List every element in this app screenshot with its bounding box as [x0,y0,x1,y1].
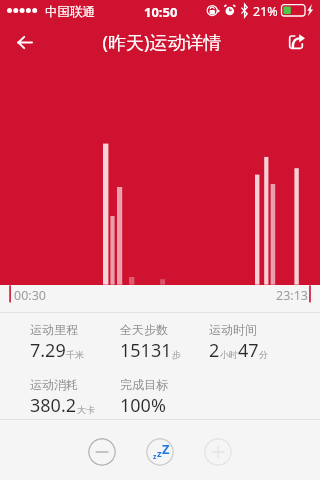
button[interactable]: Decrease [88,438,116,466]
staticText: 步 [172,349,181,360]
button[interactable]: Add [204,438,232,466]
staticText: 7.29 [30,338,66,363]
staticText: 中国联通 [45,4,95,20]
staticText: (昨天)运动详情 [2,30,320,55]
button[interactable]: Sleep [146,438,174,466]
button[interactable]: Share [279,24,315,60]
staticText: z [153,452,157,462]
staticText: 运动消耗 [30,377,78,392]
staticText: 15131 [120,338,172,363]
staticText: 100% [120,393,166,418]
staticText: 分 [259,349,268,360]
staticText: 47 [238,338,259,363]
staticText: 2 [209,338,220,363]
staticText: 380.2 [30,393,77,418]
staticText: 10:50 [144,3,178,21]
staticText: 千米 [66,349,84,360]
staticText: 23:13 [276,287,308,304]
staticText: 运动时间 [209,322,257,337]
staticText: 00:30 [14,287,46,304]
staticText: 大卡 [77,404,95,415]
staticText: 21% [253,3,278,20]
button[interactable]: Back [7,24,47,60]
staticText: Z [162,440,170,458]
staticText: 全天步数 [120,322,168,337]
staticText: 运动里程 [30,322,78,337]
staticText: 完成目标 [120,377,168,392]
staticText: 小时 [220,349,238,360]
staticText: z [157,447,162,460]
